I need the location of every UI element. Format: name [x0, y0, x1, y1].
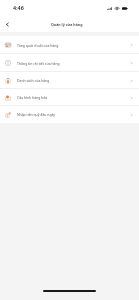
button[interactable]: Thông tin chi tiết cửa hàng: [0, 54, 139, 72]
button[interactable]: Cấu hình hàng hóa: [0, 89, 139, 106]
button[interactable]: Danh sách cửa hàng: [0, 72, 139, 89]
staticText: Cấu hình hàng hóa: [17, 95, 48, 100]
staticText: Nhập tiền quỹ đầu ngày: [17, 112, 56, 117]
staticText: Danh sách cửa hàng: [17, 78, 50, 83]
staticText: Thông tin chi tiết cửa hàng: [17, 61, 60, 66]
button[interactable]: Tổng quát chuỗi cửa hàng: [0, 36, 139, 54]
staticText: 4:46: [13, 4, 24, 11]
button[interactable]: Nhập tiền quỹ đầu ngày: [0, 106, 139, 123]
staticText: Tổng quát chuỗi cửa hàng: [17, 43, 59, 48]
staticText: Quản lý cửa hàng: [51, 22, 83, 27]
button[interactable]: Back: [0, 17, 14, 31]
